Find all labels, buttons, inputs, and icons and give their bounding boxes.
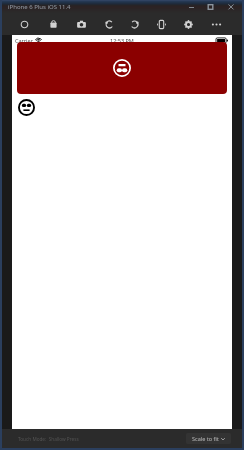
button[interactable]: Rotate left — [98, 13, 120, 35]
button[interactable]: Shake — [150, 13, 172, 35]
button[interactable]: App logo banner — [17, 42, 227, 94]
staticText: Touch Mode: Shallow Press — [18, 436, 79, 442]
button[interactable]: Scale to fit — [186, 433, 231, 444]
staticText: Scale to fit — [192, 435, 219, 442]
button[interactable]: Close — [220, 0, 242, 13]
button[interactable]: Lock — [42, 13, 64, 35]
button[interactable]: Settings — [177, 13, 199, 35]
button[interactable]: Minimize — [182, 0, 201, 13]
button[interactable]: Screenshot — [70, 13, 92, 35]
staticText: Carrier — [15, 37, 33, 44]
button[interactable]: Maximize — [201, 0, 220, 13]
button[interactable]: Rotate right — [123, 13, 145, 35]
button[interactable]: Expressionless face — [18, 99, 35, 116]
button[interactable]: Home — [13, 13, 35, 35]
button[interactable]: More — [205, 13, 227, 35]
staticText: iPhone 6 Plus iOS 11.4 — [8, 3, 71, 11]
staticText: 12:53 PM — [110, 37, 134, 44]
